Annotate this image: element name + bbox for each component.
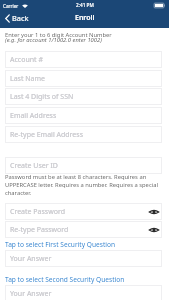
button[interactable]: Show password bbox=[148, 224, 159, 235]
button[interactable]: Create User ID bbox=[5, 157, 162, 174]
button[interactable]: Account # bbox=[5, 51, 162, 68]
button[interactable]: Your Answer bbox=[5, 250, 162, 267]
staticText: Create User ID bbox=[10, 161, 58, 171]
staticText: Enroll bbox=[75, 13, 95, 23]
staticText: Your Answer bbox=[10, 254, 52, 264]
button[interactable]: Show password bbox=[148, 206, 159, 217]
staticText: Re-type Password bbox=[10, 225, 69, 235]
staticText: Email Address bbox=[10, 111, 57, 121]
button[interactable]: Create Password bbox=[5, 203, 162, 220]
staticText: Account # bbox=[10, 55, 43, 65]
staticText: Your Answer bbox=[10, 289, 52, 299]
button[interactable]: Back bbox=[3, 12, 31, 24]
staticText: Create Password bbox=[10, 207, 66, 217]
button[interactable]: Last Name bbox=[5, 70, 162, 87]
staticText: Last Name bbox=[10, 74, 46, 84]
staticText: Tap to select Second Security Question bbox=[5, 275, 125, 284]
staticText: Back bbox=[12, 13, 29, 23]
staticText: 2:41 PM bbox=[76, 2, 94, 8]
staticText: Enter your 1 to 6 digit Account Number bbox=[5, 31, 112, 39]
staticText: Password must be at least 8 characters. … bbox=[5, 173, 166, 197]
staticText: Tap to select First Security Question bbox=[5, 240, 116, 249]
button[interactable]: Re-type Password bbox=[5, 221, 162, 238]
staticText: (e.g. for account 1/1002.0 enter 1002) bbox=[5, 36, 102, 44]
staticText: Re-type Email Address bbox=[10, 130, 84, 140]
button[interactable]: Tap to select Second Security Question bbox=[5, 275, 125, 284]
button[interactable]: Email Address bbox=[5, 107, 162, 124]
button[interactable]: Your Answer bbox=[5, 285, 162, 300]
button[interactable]: Last 4 Digits of SSN bbox=[5, 88, 162, 105]
button[interactable]: Re-type Email Address bbox=[5, 126, 162, 143]
button[interactable]: Tap to select First Security Question bbox=[5, 240, 116, 249]
staticText: Carrier bbox=[3, 3, 19, 9]
staticText: Last 4 Digits of SSN bbox=[10, 92, 74, 102]
